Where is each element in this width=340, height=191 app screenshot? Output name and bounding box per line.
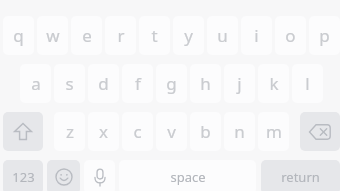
button[interactable]: o	[275, 16, 306, 55]
button[interactable]: return	[261, 160, 340, 191]
button[interactable]: b	[190, 112, 221, 151]
button[interactable]: l	[292, 64, 323, 103]
staticText: w	[46, 24, 60, 47]
staticText: d	[98, 72, 109, 95]
button[interactable]: q	[3, 16, 34, 55]
button[interactable]: d	[88, 64, 119, 103]
button[interactable]: w	[37, 16, 68, 55]
staticText: s	[65, 72, 74, 95]
staticText: t	[151, 24, 158, 47]
staticText: o	[285, 24, 296, 47]
button[interactable]: c	[122, 112, 153, 151]
button[interactable]: space	[119, 160, 256, 191]
staticText: b	[200, 120, 211, 143]
button[interactable]: r	[105, 16, 136, 55]
button[interactable]: z	[54, 112, 85, 151]
staticText: r	[117, 24, 125, 47]
staticText: u	[217, 24, 228, 47]
button[interactable]: Emoji	[47, 160, 80, 191]
button[interactable]: u	[207, 16, 238, 55]
button[interactable]: k	[258, 64, 289, 103]
button[interactable]: p	[309, 16, 340, 55]
button[interactable]: j	[224, 64, 255, 103]
staticText: n	[234, 120, 245, 143]
staticText: p	[319, 24, 330, 47]
button[interactable]: m	[258, 112, 289, 151]
staticText: x	[99, 120, 108, 143]
staticText: e	[82, 24, 92, 47]
button[interactable]: Backspace	[300, 112, 340, 151]
staticText: return	[281, 168, 320, 186]
staticText: y	[184, 24, 193, 47]
staticText: g	[166, 72, 177, 95]
staticText: h	[200, 72, 211, 95]
staticText: i	[254, 24, 259, 47]
button[interactable]: f	[122, 64, 153, 103]
staticText: a	[31, 72, 41, 95]
staticText: j	[237, 72, 242, 95]
staticText: m	[266, 120, 282, 143]
staticText: k	[269, 72, 279, 95]
staticText: space	[170, 168, 206, 186]
button[interactable]: x	[88, 112, 119, 151]
staticText: f	[135, 72, 141, 95]
staticText: z	[66, 120, 74, 143]
button[interactable]: i	[241, 16, 272, 55]
button[interactable]: n	[224, 112, 255, 151]
button[interactable]: s	[54, 64, 85, 103]
button[interactable]: Dictation	[84, 160, 115, 191]
button[interactable]: Shift	[3, 112, 43, 151]
staticText: q	[13, 24, 24, 47]
button[interactable]: h	[190, 64, 221, 103]
button[interactable]: 123	[3, 160, 43, 191]
staticText: 123	[12, 168, 35, 186]
button[interactable]: v	[156, 112, 187, 151]
button[interactable]: g	[156, 64, 187, 103]
staticText: l	[305, 72, 310, 95]
staticText: c	[133, 120, 142, 143]
button[interactable]: e	[71, 16, 102, 55]
button[interactable]: a	[20, 64, 51, 103]
button[interactable]: y	[173, 16, 204, 55]
button[interactable]: t	[139, 16, 170, 55]
staticText: v	[167, 120, 176, 143]
